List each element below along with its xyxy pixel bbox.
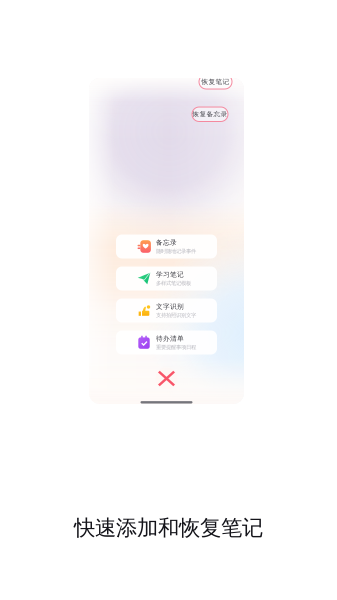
button[interactable]: Close xyxy=(154,366,178,390)
button[interactable]: 学习笔记 xyxy=(116,266,217,290)
staticText: 随时随地记录事件 xyxy=(156,248,196,255)
staticText: 重要提醒事项日程 xyxy=(156,344,196,351)
staticText: 多样式笔记模板 xyxy=(156,280,191,287)
staticText: 待办清单 xyxy=(156,334,184,343)
button[interactable]: 恢复备忘录 xyxy=(192,107,228,121)
button[interactable]: 恢复笔记 xyxy=(199,74,232,89)
button[interactable]: 备忘录 xyxy=(116,234,217,258)
staticText: 学习笔记 xyxy=(156,270,184,279)
staticText: 文字识别 xyxy=(156,302,184,311)
button[interactable]: 文字识别 xyxy=(116,298,217,322)
staticText: 恢复备忘录 xyxy=(192,110,227,118)
button[interactable]: 待办清单 xyxy=(116,330,217,354)
staticText: 快速添加和恢复笔记 xyxy=(74,515,263,541)
staticText: 支持拍照识别文字 xyxy=(156,312,196,319)
staticText: 备忘录 xyxy=(156,238,177,247)
staticText: 恢复笔记 xyxy=(201,78,229,86)
